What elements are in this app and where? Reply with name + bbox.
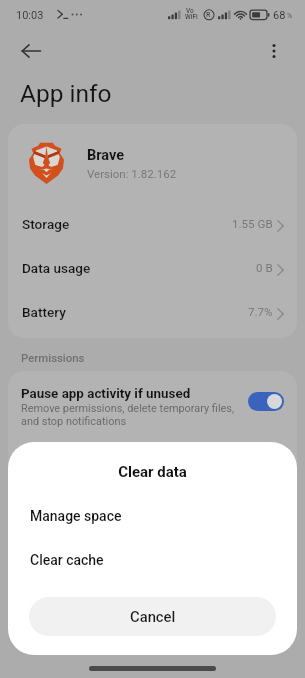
staticText: Storage [22,216,70,232]
staticText: 7.7% [248,305,273,319]
button[interactable]: Cancel [29,597,276,636]
staticText: R [206,11,211,19]
staticText: 10:03 [16,9,44,22]
button[interactable]: Clear cache [8,538,297,582]
button[interactable]: Battery [8,290,297,334]
staticText: Pause app activity if unused [21,386,191,402]
staticText: Remove permissions, delete temporary fil… [21,402,235,428]
staticText: Manage space [30,508,122,524]
button[interactable]: Storage [8,202,297,246]
staticText: Version: 1.82.162 [87,167,177,180]
button[interactable]: Data usage [8,246,297,290]
staticText: Cancel [130,608,176,625]
staticText: 0 B [256,261,273,275]
button[interactable]: More options [259,36,289,66]
staticText: Clear cache [30,552,104,568]
staticText: 68 [273,9,286,22]
staticText: Clear data [8,463,297,481]
staticText: Brave [87,147,125,164]
staticText: WiFi [185,13,198,21]
button[interactable]: Manage space [8,494,297,538]
staticText: % [287,12,293,20]
staticText: 1.55 GB [232,217,273,231]
staticText: Permissions [21,351,85,364]
staticText: Battery [22,304,66,320]
button[interactable]: Back [14,34,48,68]
button[interactable]: Pause app activity if unused [8,371,297,428]
staticText: Data usage [22,260,91,276]
staticText: Vo [186,7,194,15]
staticText: App info [20,79,112,108]
